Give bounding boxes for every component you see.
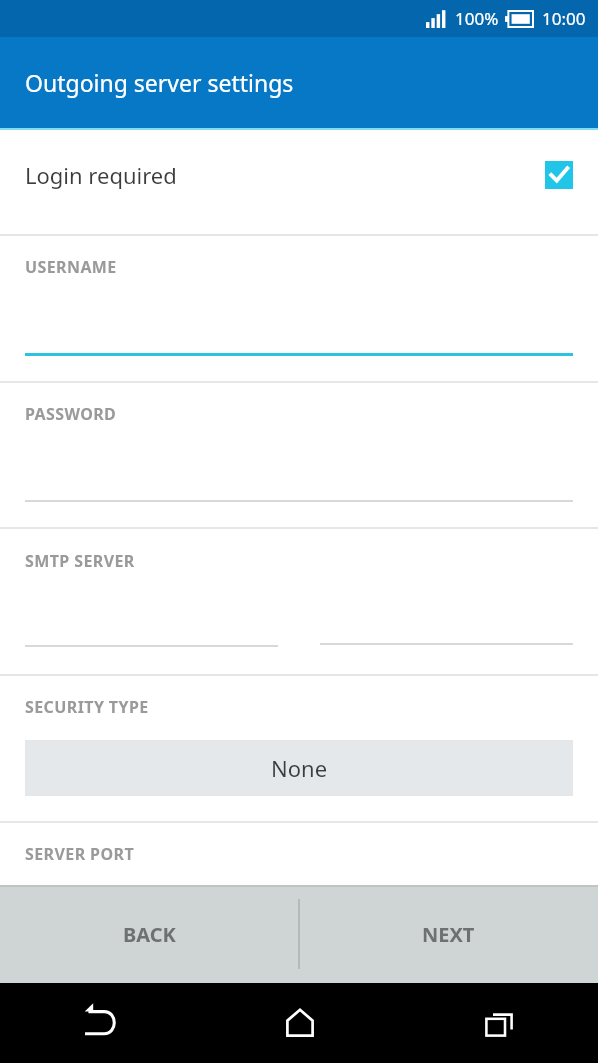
staticText: Login required: [25, 160, 177, 190]
staticText: 10:00: [542, 7, 586, 30]
staticText: Outgoing server settings: [25, 67, 294, 98]
staticText: SECURITY TYPE: [25, 696, 149, 718]
staticText: None: [271, 753, 328, 783]
button[interactable]: Login required: [0, 130, 598, 220]
button[interactable]: Home: [200, 983, 399, 1063]
button[interactable]: None: [25, 740, 573, 796]
button[interactable]: BACK: [0, 885, 299, 983]
staticText: BACK: [123, 921, 176, 948]
other: Login required checkbox: [545, 161, 573, 189]
staticText: PASSWORD: [25, 403, 117, 425]
staticText: SMTP SERVER: [25, 550, 135, 572]
button[interactable]: Recent apps: [399, 983, 598, 1063]
button[interactable]: NEXT: [299, 885, 598, 983]
staticText: 100%: [455, 7, 499, 30]
staticText: NEXT: [422, 921, 475, 948]
staticText: USERNAME: [25, 256, 117, 278]
staticText: SERVER PORT: [25, 843, 135, 865]
button[interactable]: Back: [0, 983, 200, 1063]
